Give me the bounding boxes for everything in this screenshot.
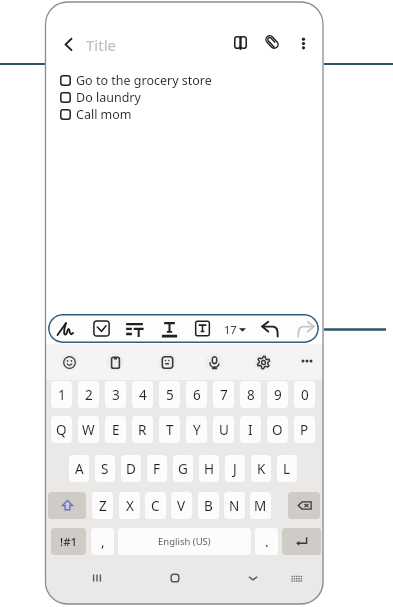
staticText: Q [56, 421, 67, 439]
button[interactable]: L [277, 455, 297, 482]
staticText: 17 [224, 322, 237, 337]
button[interactable]: Handwriting [48, 314, 319, 343]
button[interactable]: G [173, 455, 193, 482]
button[interactable]: Handwriting [56, 319, 75, 338]
button[interactable]: J [225, 455, 245, 482]
button[interactable]: Text box [193, 319, 212, 338]
button[interactable]: Reading mode [234, 36, 247, 49]
button[interactable]: U [213, 416, 234, 443]
button[interactable]: Key [282, 528, 321, 555]
button[interactable]: 6 [186, 381, 207, 408]
button[interactable]: Y [186, 416, 207, 443]
staticText: English (US) [158, 535, 211, 548]
button[interactable]: Checklist [92, 319, 111, 338]
button[interactable]: Key [48, 492, 86, 519]
staticText: . [265, 533, 269, 551]
button[interactable]: English (US) [118, 528, 251, 555]
button[interactable]: X [119, 492, 140, 519]
button[interactable]: 17 [224, 322, 246, 337]
button[interactable]: Do laundry [60, 89, 141, 106]
button[interactable]: Text format [160, 319, 179, 338]
staticText: C [151, 497, 160, 515]
button[interactable]: Call mom [60, 106, 132, 123]
button[interactable]: Keyboard settings [254, 353, 272, 371]
button[interactable]: E [105, 416, 126, 443]
staticText: 8 [247, 386, 255, 404]
button[interactable]: W [78, 416, 99, 443]
button[interactable]: Hide keyboard [243, 568, 263, 588]
staticText: X [126, 497, 134, 515]
button[interactable]: Z [92, 492, 113, 519]
button[interactable]: Key [288, 492, 320, 519]
button[interactable]: M [250, 492, 271, 519]
button[interactable]: B [198, 492, 219, 519]
button[interactable]: , [91, 528, 114, 555]
button[interactable]: F [147, 455, 167, 482]
staticText: Call mom [76, 106, 132, 123]
staticText: Go to the grocery store [76, 72, 212, 89]
button[interactable]: Attach file [263, 33, 281, 51]
button[interactable]: N [224, 492, 245, 519]
button[interactable]: P [294, 416, 315, 443]
button[interactable]: Q [51, 416, 72, 443]
button[interactable]: Change keyboard [285, 568, 305, 588]
button[interactable]: 9 [267, 381, 288, 408]
button[interactable]: 2 [78, 381, 99, 408]
staticText: E [112, 421, 120, 439]
button[interactable]: T [159, 416, 180, 443]
button[interactable]: K [251, 455, 271, 482]
button[interactable]: Home [165, 568, 185, 588]
button[interactable]: 4 [132, 381, 153, 408]
button[interactable]: H [199, 455, 219, 482]
button[interactable]: 5 [159, 381, 180, 408]
staticText: Title [86, 35, 116, 55]
staticText: J [233, 460, 237, 478]
staticText: Z [99, 497, 107, 515]
button[interactable]: Clipboard [106, 353, 124, 371]
button[interactable]: . [255, 528, 278, 555]
staticText: A [75, 460, 84, 478]
button[interactable]: R [132, 416, 153, 443]
button[interactable]: Paragraph style [125, 319, 144, 338]
button[interactable]: C [145, 492, 166, 519]
button[interactable]: Go to the grocery store [60, 72, 212, 89]
staticText: 5 [166, 386, 174, 404]
button[interactable]: More keyboard options [301, 355, 313, 367]
staticText: H [204, 460, 215, 478]
staticText: G [178, 460, 188, 478]
button[interactable]: V [171, 492, 192, 519]
staticText: 3 [112, 386, 120, 404]
staticText: K [257, 460, 266, 478]
staticText: D [126, 460, 136, 478]
button[interactable]: O [267, 416, 288, 443]
staticText: , [101, 533, 105, 551]
staticText: Y [193, 421, 201, 439]
button[interactable]: 8 [240, 381, 261, 408]
button[interactable]: 7 [213, 381, 234, 408]
button[interactable]: 0 [294, 381, 315, 408]
staticText: T [166, 421, 174, 439]
button[interactable]: Voice input [205, 353, 223, 371]
button[interactable]: 3 [105, 381, 126, 408]
button[interactable]: I [240, 416, 261, 443]
button[interactable]: Emoji [60, 353, 78, 371]
button[interactable]: More options [297, 37, 310, 50]
staticText: 9 [274, 386, 282, 404]
button[interactable]: D [121, 455, 141, 482]
button[interactable]: S [95, 455, 115, 482]
staticText: L [283, 460, 291, 478]
button[interactable]: !#1 [51, 528, 86, 555]
button[interactable]: Recents [87, 568, 107, 588]
staticText: P [300, 421, 309, 439]
staticText: Do laundry [76, 89, 141, 106]
staticText: B [204, 497, 213, 515]
staticText: I [248, 421, 253, 439]
staticText: 1 [58, 386, 66, 404]
button[interactable]: A [69, 455, 89, 482]
button[interactable]: Redo [296, 319, 315, 338]
button[interactable]: Stickers [158, 353, 176, 371]
button[interactable]: Back [56, 32, 80, 56]
button[interactable]: 1 [51, 381, 72, 408]
staticText: 4 [139, 386, 147, 404]
button[interactable]: Undo [261, 319, 280, 338]
